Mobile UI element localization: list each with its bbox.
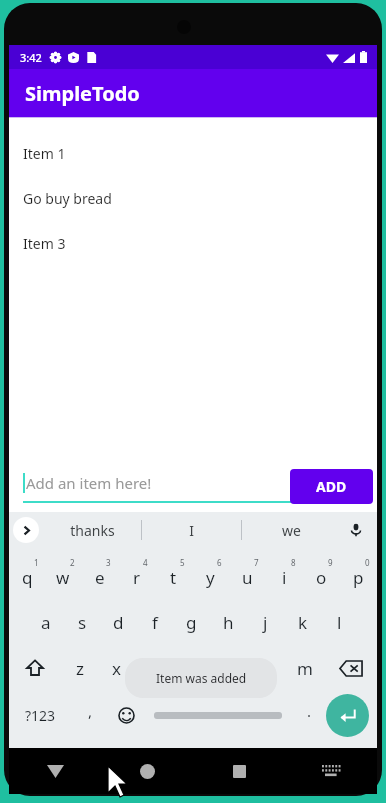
staticText: we bbox=[282, 521, 301, 540]
button[interactable]: Switch keyboard bbox=[285, 748, 377, 794]
staticText: Add an item here! bbox=[26, 473, 152, 493]
staticText: 6 bbox=[217, 557, 222, 568]
button[interactable]: Enter bbox=[326, 694, 369, 737]
staticText: ADD bbox=[316, 477, 347, 496]
staticText: z bbox=[76, 657, 84, 680]
button[interactable]: m bbox=[286, 645, 324, 691]
button[interactable]: Home bbox=[101, 748, 193, 794]
staticText: ?123 bbox=[25, 706, 56, 725]
button[interactable]: k bbox=[284, 599, 321, 645]
button[interactable]: p bbox=[340, 552, 377, 599]
staticText: r bbox=[133, 566, 141, 589]
staticText: SimpleTodo bbox=[25, 80, 140, 107]
staticText: 5 bbox=[180, 557, 185, 568]
button[interactable]: Emoji bbox=[109, 691, 143, 739]
staticText: i bbox=[282, 566, 287, 589]
button[interactable]: , bbox=[71, 691, 109, 739]
button[interactable]: h bbox=[210, 599, 247, 645]
staticText: c bbox=[149, 657, 158, 680]
button[interactable]: v bbox=[172, 645, 210, 691]
button[interactable]: Item 3 bbox=[9, 221, 377, 266]
staticText: q bbox=[22, 566, 33, 589]
button[interactable]: f bbox=[136, 599, 173, 645]
staticText: e bbox=[95, 566, 105, 589]
button[interactable]: ADD bbox=[290, 469, 373, 504]
staticText: o bbox=[316, 566, 327, 589]
button[interactable]: w bbox=[45, 552, 81, 599]
staticText: b bbox=[224, 657, 235, 680]
button[interactable]: z bbox=[61, 645, 98, 691]
button[interactable]: n bbox=[248, 645, 286, 691]
button[interactable]: ?123 bbox=[9, 691, 71, 739]
button[interactable]: Add an item here! bbox=[23, 473, 295, 503]
staticText: u bbox=[242, 566, 253, 589]
button[interactable]: q bbox=[9, 552, 45, 599]
staticText: v bbox=[187, 657, 196, 680]
button[interactable]: i bbox=[266, 552, 303, 599]
button[interactable]: we bbox=[242, 512, 341, 548]
staticText: f bbox=[152, 611, 158, 634]
staticText: . bbox=[307, 701, 312, 721]
staticText: 7 bbox=[254, 557, 259, 568]
staticText: a bbox=[41, 611, 51, 634]
button[interactable]: g bbox=[173, 599, 210, 645]
staticText: thanks bbox=[70, 521, 115, 540]
button[interactable]: More suggestions bbox=[13, 517, 39, 543]
staticText: y bbox=[206, 566, 215, 589]
button[interactable]: . bbox=[292, 691, 326, 739]
staticText: k bbox=[298, 611, 308, 634]
button[interactable]: e bbox=[81, 552, 118, 599]
staticText: w bbox=[56, 566, 70, 589]
button[interactable]: SimpleTodo bbox=[9, 69, 377, 117]
staticText: l bbox=[337, 611, 342, 634]
staticText: m bbox=[297, 657, 313, 680]
staticText: 4 bbox=[143, 557, 148, 568]
staticText: s bbox=[78, 611, 87, 634]
staticText: d bbox=[113, 611, 124, 634]
button[interactable]: y bbox=[192, 552, 229, 599]
staticText: 3:42 bbox=[20, 50, 42, 65]
button[interactable]: l bbox=[321, 599, 358, 645]
staticText: p bbox=[353, 566, 364, 589]
button[interactable]: o bbox=[303, 552, 340, 599]
staticText: Item 1 bbox=[23, 144, 66, 163]
button[interactable]: r bbox=[118, 552, 155, 599]
staticText: 0 bbox=[365, 557, 370, 568]
staticText: j bbox=[263, 611, 268, 634]
button[interactable]: c bbox=[135, 645, 172, 691]
button[interactable]: x bbox=[98, 645, 135, 691]
staticText: , bbox=[88, 701, 93, 721]
button[interactable]: u bbox=[229, 552, 266, 599]
staticText: g bbox=[186, 611, 197, 634]
staticText: t bbox=[170, 566, 177, 589]
button[interactable]: s bbox=[64, 599, 100, 645]
button[interactable]: I bbox=[142, 512, 241, 548]
staticText: x bbox=[112, 657, 121, 680]
button[interactable]: Backspace bbox=[324, 645, 377, 691]
staticText: I bbox=[189, 521, 194, 540]
button[interactable]: Space bbox=[143, 691, 292, 739]
staticText: 2 bbox=[70, 557, 75, 568]
button[interactable]: j bbox=[247, 599, 284, 645]
button[interactable]: b bbox=[210, 645, 248, 691]
button[interactable]: Back bbox=[9, 748, 101, 794]
button[interactable]: Go buy bread bbox=[9, 176, 377, 221]
staticText: Item was added bbox=[156, 670, 247, 686]
button[interactable]: Shift bbox=[9, 645, 61, 691]
button[interactable]: Recents bbox=[193, 748, 285, 794]
staticText: Go buy bread bbox=[23, 189, 112, 208]
staticText: n bbox=[262, 657, 273, 680]
button[interactable]: Item 1 bbox=[9, 131, 377, 176]
staticText: 8 bbox=[291, 557, 296, 568]
button[interactable]: a bbox=[28, 599, 64, 645]
staticText: Item 3 bbox=[23, 234, 66, 253]
staticText: 3 bbox=[106, 557, 111, 568]
button[interactable]: Voice input bbox=[343, 517, 369, 543]
staticText: h bbox=[223, 611, 234, 634]
button[interactable]: thanks bbox=[43, 512, 141, 548]
staticText: 9 bbox=[328, 557, 333, 568]
button[interactable]: t bbox=[155, 552, 192, 599]
button[interactable]: d bbox=[100, 599, 136, 645]
staticText: 1 bbox=[34, 557, 39, 568]
